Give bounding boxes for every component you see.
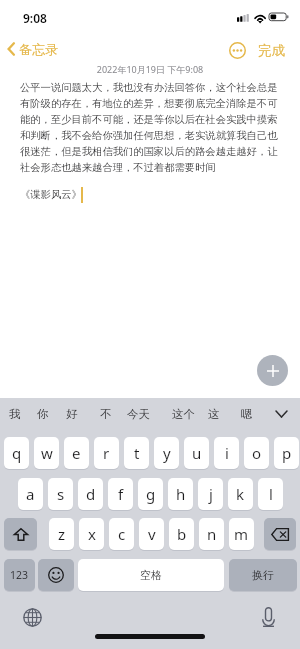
button[interactable]: 今天 [125,405,152,423]
button[interactable]: a [18,478,43,510]
staticText: q [12,443,22,463]
button[interactable]: 空格 [78,559,224,591]
button[interactable]: n [199,518,224,550]
button[interactable]: 这个 [170,405,197,423]
button[interactable]: 我 [7,405,23,423]
button[interactable]: r [94,437,119,469]
staticText: x [88,524,96,544]
staticText: 嗯 [241,407,253,421]
button[interactable]: m [229,518,254,550]
button[interactable]: Switch language [20,605,45,630]
staticText: t [134,443,140,463]
button[interactable]: w [34,437,59,469]
button[interactable]: 换行 [229,559,297,591]
button[interactable]: f [108,478,133,510]
staticText: f [118,484,124,504]
staticText: r [103,443,110,463]
button[interactable]: g [138,478,163,510]
staticText: 123 [10,568,29,582]
button[interactable]: k [228,478,253,510]
button[interactable]: 你 [35,405,51,423]
button[interactable]: Dictation [256,604,281,629]
staticText: 好 [66,407,78,421]
button[interactable]: Emoji [38,559,74,591]
button[interactable]: New note [257,355,288,386]
staticText: y [163,443,171,463]
staticText: 你 [37,407,49,421]
button[interactable]: i [214,437,239,469]
button[interactable]: s [48,478,73,510]
staticText: 今天 [127,407,150,421]
staticText: s [57,484,65,504]
staticText: 我 [9,407,21,421]
staticText: 备忘录 [19,41,58,57]
staticText: w [41,443,53,463]
staticText: 公平一说问题太大，我也没有办法回答你，这个社会总是有阶级的存在，有地位的差异，想… [20,81,280,174]
button[interactable]: j [198,478,223,510]
staticText: z [58,524,66,544]
button[interactable]: v [139,518,164,550]
button[interactable]: Shift [4,518,37,550]
staticText: k [236,484,245,504]
button[interactable]: e [64,437,89,469]
staticText: 《谍影风云》 [20,188,280,201]
staticText: v [148,524,156,544]
button[interactable]: p [274,437,299,469]
staticText: m [234,524,249,544]
button[interactable]: 嗯 [239,405,255,423]
staticText: g [146,484,156,504]
staticText: o [252,443,262,463]
staticText: 空格 [140,568,162,582]
staticText: h [176,484,186,504]
button[interactable]: z [49,518,74,550]
button[interactable]: l [258,478,283,510]
button[interactable]: u [184,437,209,469]
button[interactable]: 完成 [258,42,285,59]
staticText: e [72,443,81,463]
button[interactable]: 备忘录 [6,41,58,57]
button[interactable]: d [78,478,103,510]
button[interactable]: Hide keyboard [272,403,291,425]
button[interactable]: b [169,518,194,550]
staticText: n [207,524,217,544]
staticText: 2022年10月19日 下午9:08 [0,63,300,75]
button[interactable]: Backspace [264,518,296,550]
staticText: 这 [208,407,220,421]
staticText: p [282,443,292,463]
button[interactable]: q [4,437,29,469]
staticText: b [177,524,187,544]
button[interactable]: o [244,437,269,469]
button[interactable]: c [109,518,134,550]
button[interactable]: h [168,478,193,510]
staticText: u [192,443,202,463]
staticText: i [225,443,229,463]
staticText: a [26,484,35,504]
button[interactable]: t [124,437,149,469]
staticText: 9:08 [23,10,47,26]
button[interactable]: x [79,518,104,550]
button[interactable]: 好 [64,405,80,423]
staticText: c [118,524,126,544]
button[interactable]: More options [229,42,246,59]
button[interactable]: 这 [206,405,222,423]
staticText: 这个 [172,407,195,421]
staticText: j [209,484,213,504]
button[interactable]: Numbers [4,559,35,591]
staticText: l [269,484,273,504]
staticText: 不 [100,407,112,421]
staticText: 完成 [258,42,285,59]
staticText: 换行 [252,568,274,582]
staticText: d [86,484,96,504]
button[interactable]: y [154,437,179,469]
button[interactable]: 不 [98,405,114,423]
